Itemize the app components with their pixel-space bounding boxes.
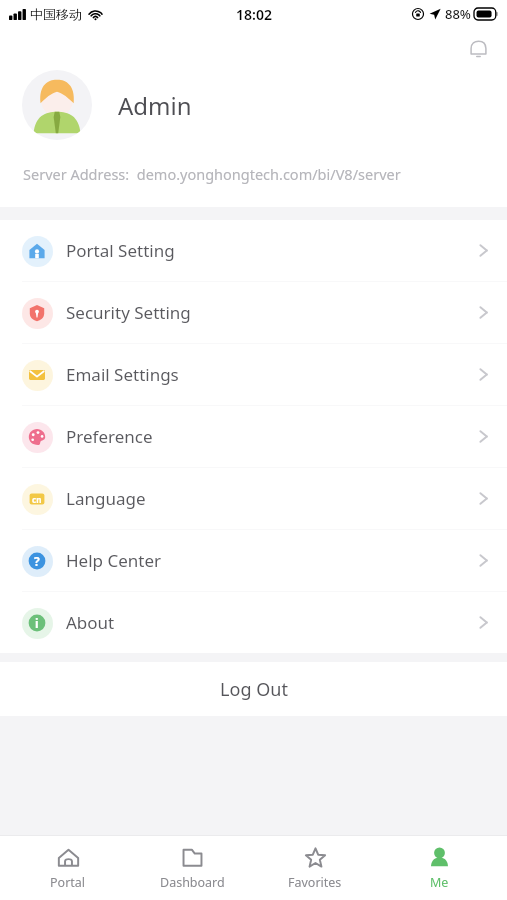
button[interactable]: Me — [384, 841, 494, 896]
button[interactable]: Log Out — [0, 662, 507, 716]
staticText: Portal Setting — [66, 239, 175, 262]
button[interactable]: ? — [0, 530, 507, 591]
button[interactable]: Dashboard — [137, 841, 247, 896]
staticText: Me — [430, 874, 449, 891]
button[interactable]: Portal — [13, 841, 123, 896]
staticText: Portal — [50, 874, 86, 891]
staticText: i — [35, 615, 39, 631]
button[interactable]: i — [0, 592, 507, 653]
staticText: cn — [32, 494, 42, 505]
staticText: About — [66, 611, 115, 634]
staticText: ? — [34, 553, 40, 569]
staticText: Help Center — [66, 549, 162, 572]
button[interactable]: Security Setting — [0, 282, 507, 343]
staticText: 88% — [445, 5, 471, 23]
button[interactable]: Portal Setting — [0, 220, 507, 281]
button[interactable]: cn — [0, 468, 507, 529]
staticText: Admin — [118, 89, 192, 122]
button[interactable]: Preference — [0, 406, 507, 467]
button[interactable]: Notifications — [461, 32, 495, 66]
staticText: Email Settings — [66, 363, 179, 386]
staticText: Log Out — [220, 677, 288, 702]
staticText: 18:02 — [236, 5, 272, 24]
staticText: Server Address: demo.yonghongtech.com/bi… — [23, 164, 401, 184]
staticText: 中国移动 — [30, 6, 82, 22]
staticText: Preference — [66, 425, 153, 448]
staticText: Dashboard — [160, 874, 225, 891]
button[interactable]: Favorites — [260, 841, 370, 896]
staticText: Language — [66, 487, 146, 510]
staticText: Security Setting — [66, 301, 191, 324]
staticText: Favorites — [288, 874, 342, 891]
button[interactable]: Admin — [0, 70, 507, 140]
button[interactable]: Email Settings — [0, 344, 507, 405]
